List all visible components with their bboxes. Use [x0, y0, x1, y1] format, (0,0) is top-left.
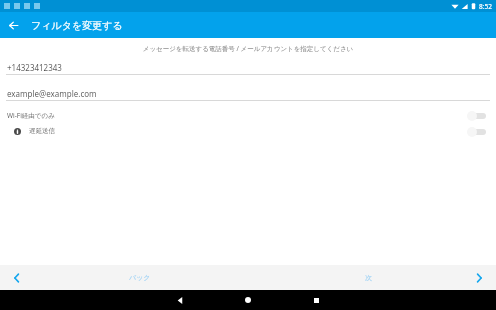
- button[interactable]: 次: [343, 265, 393, 290]
- staticText: 8:52: [479, 2, 492, 11]
- button[interactable]: Recents: [306, 290, 326, 310]
- button[interactable]: Back: [0, 12, 26, 38]
- staticText: フィルタを変更する: [31, 19, 123, 32]
- button[interactable]: Home: [238, 290, 258, 310]
- button[interactable]: +14323412343: [0, 61, 496, 74]
- button[interactable]: Toggle: [467, 110, 487, 121]
- button[interactable]: Back: [170, 290, 190, 310]
- button[interactable]: 遅延送信: [0, 123, 496, 139]
- staticText: example@example.com: [7, 88, 97, 99]
- button[interactable]: バック: [110, 265, 170, 290]
- staticText: バック: [129, 273, 151, 282]
- staticText: +14323412343: [7, 62, 62, 73]
- button[interactable]: Wi-Fi経由でのみ: [0, 107, 496, 123]
- staticText: メッセージを転送する電話番号 / メールアカウントを指定してください: [0, 44, 496, 53]
- staticText: 次: [365, 273, 372, 282]
- button[interactable]: Previous: [0, 265, 34, 290]
- staticText: Wi-Fi経由でのみ: [7, 111, 55, 120]
- button[interactable]: example@example.com: [0, 87, 496, 100]
- button[interactable]: Toggle: [467, 126, 487, 137]
- button[interactable]: Next: [462, 265, 496, 290]
- staticText: 遅延送信: [29, 127, 55, 135]
